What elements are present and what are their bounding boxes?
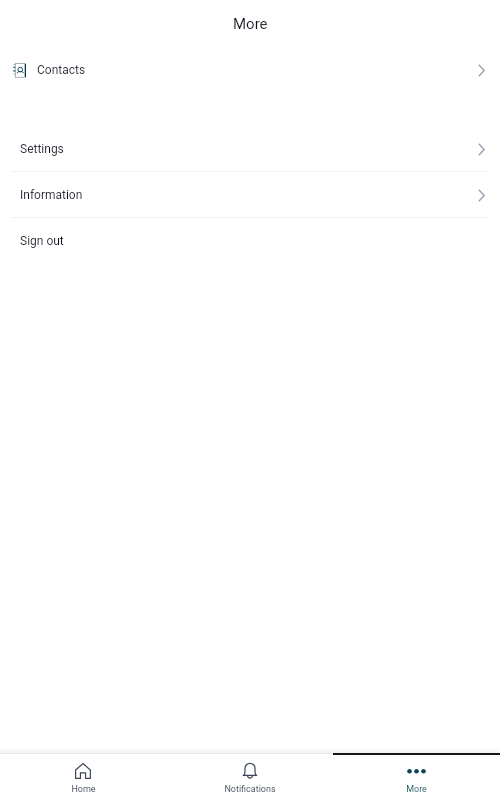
staticText: Sign out (20, 234, 64, 248)
button[interactable]: Contacts (0, 47, 500, 93)
button[interactable]: More (333, 755, 500, 795)
staticText: Settings (20, 142, 64, 156)
staticText: More (406, 784, 427, 795)
button[interactable]: Home (0, 755, 166, 795)
staticText: Notifications (224, 784, 276, 795)
staticText: Home (71, 784, 96, 795)
button[interactable]: Sign out (0, 218, 500, 264)
staticText: Contacts (37, 63, 86, 77)
button[interactable]: Settings (0, 126, 500, 172)
staticText: Information (20, 188, 83, 202)
staticText: More (233, 15, 268, 33)
button[interactable]: Information (0, 172, 500, 218)
button[interactable]: Notifications (166, 755, 333, 795)
